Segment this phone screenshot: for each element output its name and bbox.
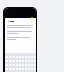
button[interactable]: Compose <box>31 17 33 19</box>
button[interactable] <box>5 20 36 22</box>
button[interactable] <box>5 8 36 18</box>
